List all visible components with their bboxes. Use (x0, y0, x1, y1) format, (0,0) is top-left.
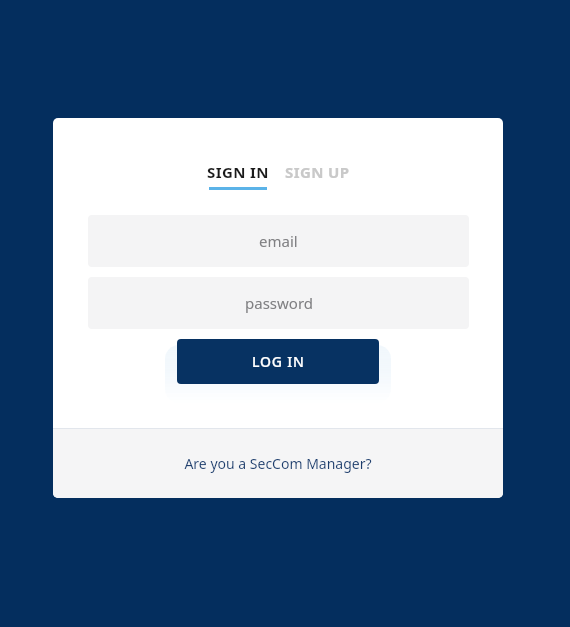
button[interactable]: Are you a SecCom Manager? (53, 429, 503, 498)
staticText: email (259, 231, 298, 251)
staticText: password (245, 293, 313, 313)
staticText: Are you a SecCom Manager? (184, 454, 372, 473)
button[interactable]: SIGN IN (207, 162, 269, 190)
staticText: LOG IN (252, 352, 305, 371)
button[interactable]: email (88, 215, 469, 267)
button[interactable]: SIGN UP (285, 162, 350, 182)
button[interactable]: LOG IN (177, 339, 379, 384)
staticText: SIGN IN (207, 162, 269, 182)
button[interactable]: password (88, 277, 469, 329)
staticText: SIGN UP (285, 162, 350, 182)
